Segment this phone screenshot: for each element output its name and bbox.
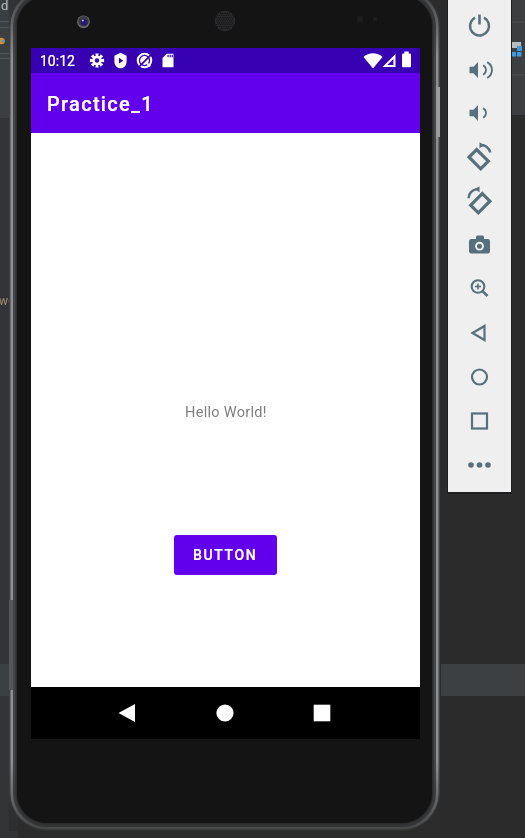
staticText: Hello World!	[185, 404, 267, 421]
button[interactable]: Back	[463, 317, 496, 350]
button[interactable]: Rotate right	[463, 185, 496, 218]
button[interactable]: Overview	[463, 405, 496, 438]
button[interactable]: Volume up	[463, 54, 496, 87]
button[interactable]: Volume down	[463, 97, 496, 130]
button[interactable]: BUTTON	[174, 535, 277, 575]
button[interactable]: Zoom	[463, 273, 496, 306]
staticText: BUTTON	[193, 547, 258, 563]
staticText: 10:12	[40, 53, 75, 69]
button[interactable]: Recent apps	[298, 689, 346, 737]
button[interactable]: Power	[463, 10, 496, 43]
staticText: w(	[0, 294, 13, 308]
staticText: d	[1, 0, 9, 13]
button[interactable]: Back	[103, 689, 151, 737]
button[interactable]: More	[463, 449, 496, 482]
button[interactable]: Home	[463, 361, 496, 394]
button[interactable]: Rotate left	[463, 141, 496, 174]
button[interactable]: Home	[201, 689, 249, 737]
staticText: Practice_1	[47, 92, 154, 115]
button[interactable]: Take screenshot	[463, 229, 496, 262]
